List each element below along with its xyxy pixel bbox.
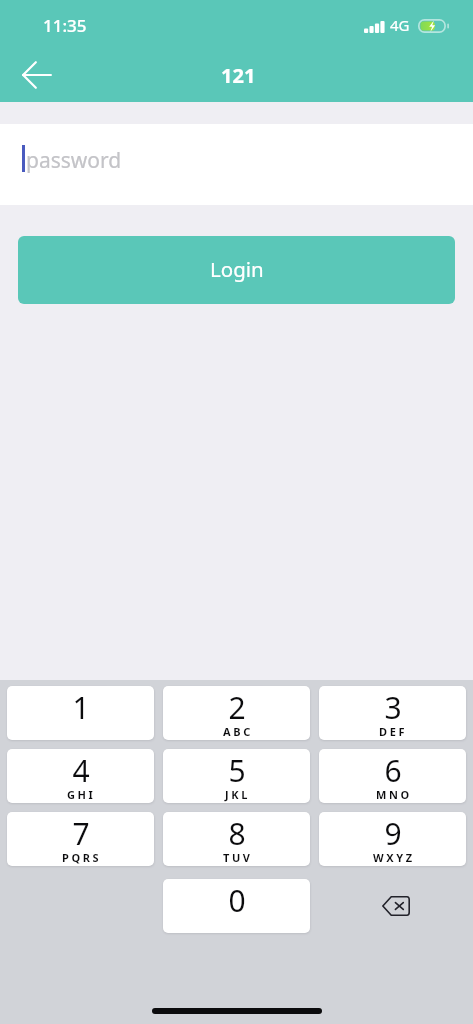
staticText: 0 (228, 880, 246, 921)
button[interactable]: 8 (163, 812, 310, 866)
staticText: MNO (376, 787, 412, 802)
staticText: PQRS (62, 850, 102, 865)
staticText: 2 (228, 687, 246, 728)
button[interactable]: Login (18, 236, 455, 304)
button[interactable]: 9 (319, 812, 466, 866)
button[interactable]: 6 (319, 749, 466, 803)
staticText: GHI (67, 787, 96, 802)
staticText: 9 (384, 813, 402, 854)
button[interactable]: Backspace (319, 879, 466, 933)
staticText: password (26, 146, 122, 175)
staticText: 5 (228, 750, 246, 791)
staticText: 11:35 (43, 14, 87, 37)
staticText: WXYZ (373, 850, 415, 865)
staticText: JKL (225, 787, 250, 802)
staticText: 4G (390, 15, 410, 35)
staticText: 121 (221, 62, 256, 89)
button[interactable]: 3 (319, 686, 466, 740)
staticText: 7 (72, 813, 90, 854)
button[interactable]: 1 (7, 686, 154, 740)
staticText: Login (210, 255, 264, 283)
staticText: 4 (72, 750, 90, 791)
button[interactable]: 4 (7, 749, 154, 803)
button[interactable]: password (0, 124, 473, 205)
staticText: 1 (72, 687, 90, 728)
staticText: DEF (379, 724, 408, 739)
staticText: ABC (223, 724, 253, 739)
button[interactable]: 2 (163, 686, 310, 740)
button[interactable]: 7 (7, 812, 154, 866)
button[interactable]: 0 (163, 879, 310, 933)
button[interactable]: 5 (163, 749, 310, 803)
button[interactable]: Back (16, 54, 58, 96)
staticText: 8 (228, 813, 246, 854)
staticText: 6 (384, 750, 402, 791)
staticText: 3 (384, 687, 402, 728)
staticText: TUV (223, 850, 253, 865)
